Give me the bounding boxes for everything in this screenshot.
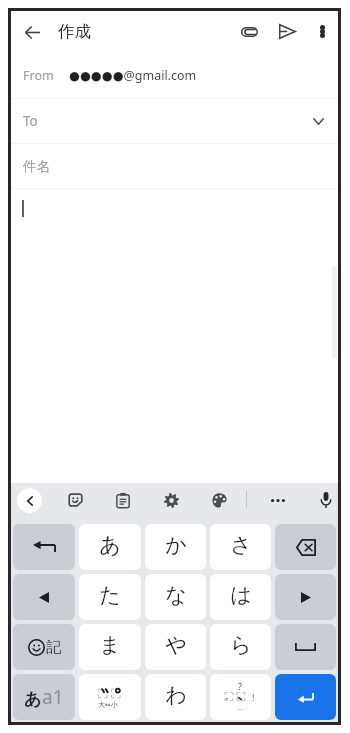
button[interactable]: More options: [264, 486, 292, 514]
staticText: か: [165, 532, 187, 558]
staticText: わ: [165, 682, 187, 708]
staticText: た: [99, 582, 121, 608]
staticText: !: [252, 691, 255, 703]
staticText: や: [165, 632, 187, 658]
button[interactable]: emoji: [13, 624, 75, 670]
button[interactable]: left: [13, 574, 75, 620]
button[interactable]: ret: [13, 524, 75, 570]
button[interactable]: dakuten: [79, 674, 141, 720]
staticText: ?: [238, 680, 242, 692]
button[interactable]: Clipboard: [109, 486, 137, 514]
staticText: ら: [230, 632, 252, 658]
button[interactable]: Attach file: [230, 11, 268, 53]
button[interactable]: Themes: [205, 486, 233, 514]
button[interactable]: や: [145, 624, 206, 670]
staticText: 記: [46, 638, 61, 657]
button[interactable]: More options: [306, 11, 338, 53]
button[interactable]: enter: [275, 674, 336, 720]
button[interactable]: ら: [210, 624, 271, 670]
button[interactable]: Voice input: [312, 486, 340, 514]
button[interactable]: Settings: [157, 486, 185, 514]
button[interactable]: か: [145, 524, 206, 570]
button[interactable]: From: [11, 53, 338, 98]
button[interactable]: space: [275, 624, 336, 670]
staticText: …: [237, 703, 243, 713]
button[interactable]: Collapse keyboard: [17, 488, 42, 513]
button[interactable]: Back: [11, 11, 53, 53]
staticText: a1: [42, 684, 64, 710]
staticText: あ: [24, 689, 42, 710]
button[interactable]: Send: [268, 11, 306, 53]
button[interactable]: ま: [79, 624, 141, 670]
staticText: ま: [99, 632, 121, 658]
staticText: To: [23, 112, 38, 130]
button[interactable]: del: [275, 524, 336, 570]
staticText: ●●●●●@gmail.com: [69, 67, 197, 84]
button[interactable]: right: [275, 574, 336, 620]
button[interactable]: aa1: [13, 674, 75, 720]
staticText: あ: [99, 532, 121, 558]
staticText: 件名: [23, 158, 50, 175]
staticText: From: [23, 67, 54, 84]
button[interactable]: Stickers: [61, 486, 89, 514]
button[interactable]: た: [79, 574, 141, 620]
button[interactable]: To: [11, 99, 338, 143]
staticText: 大⇔小: [98, 700, 118, 709]
button[interactable]: 件名: [11, 144, 338, 188]
button[interactable]: punct: [210, 674, 271, 720]
staticText: は: [230, 582, 252, 608]
button[interactable]: さ: [210, 524, 271, 570]
button[interactable]: わ: [145, 674, 206, 720]
staticText: さ: [230, 532, 252, 558]
staticText: な: [165, 582, 187, 608]
button[interactable]: は: [210, 574, 271, 620]
button[interactable]: な: [145, 574, 206, 620]
staticText: 作成: [58, 21, 91, 42]
button[interactable]: あ: [79, 524, 141, 570]
